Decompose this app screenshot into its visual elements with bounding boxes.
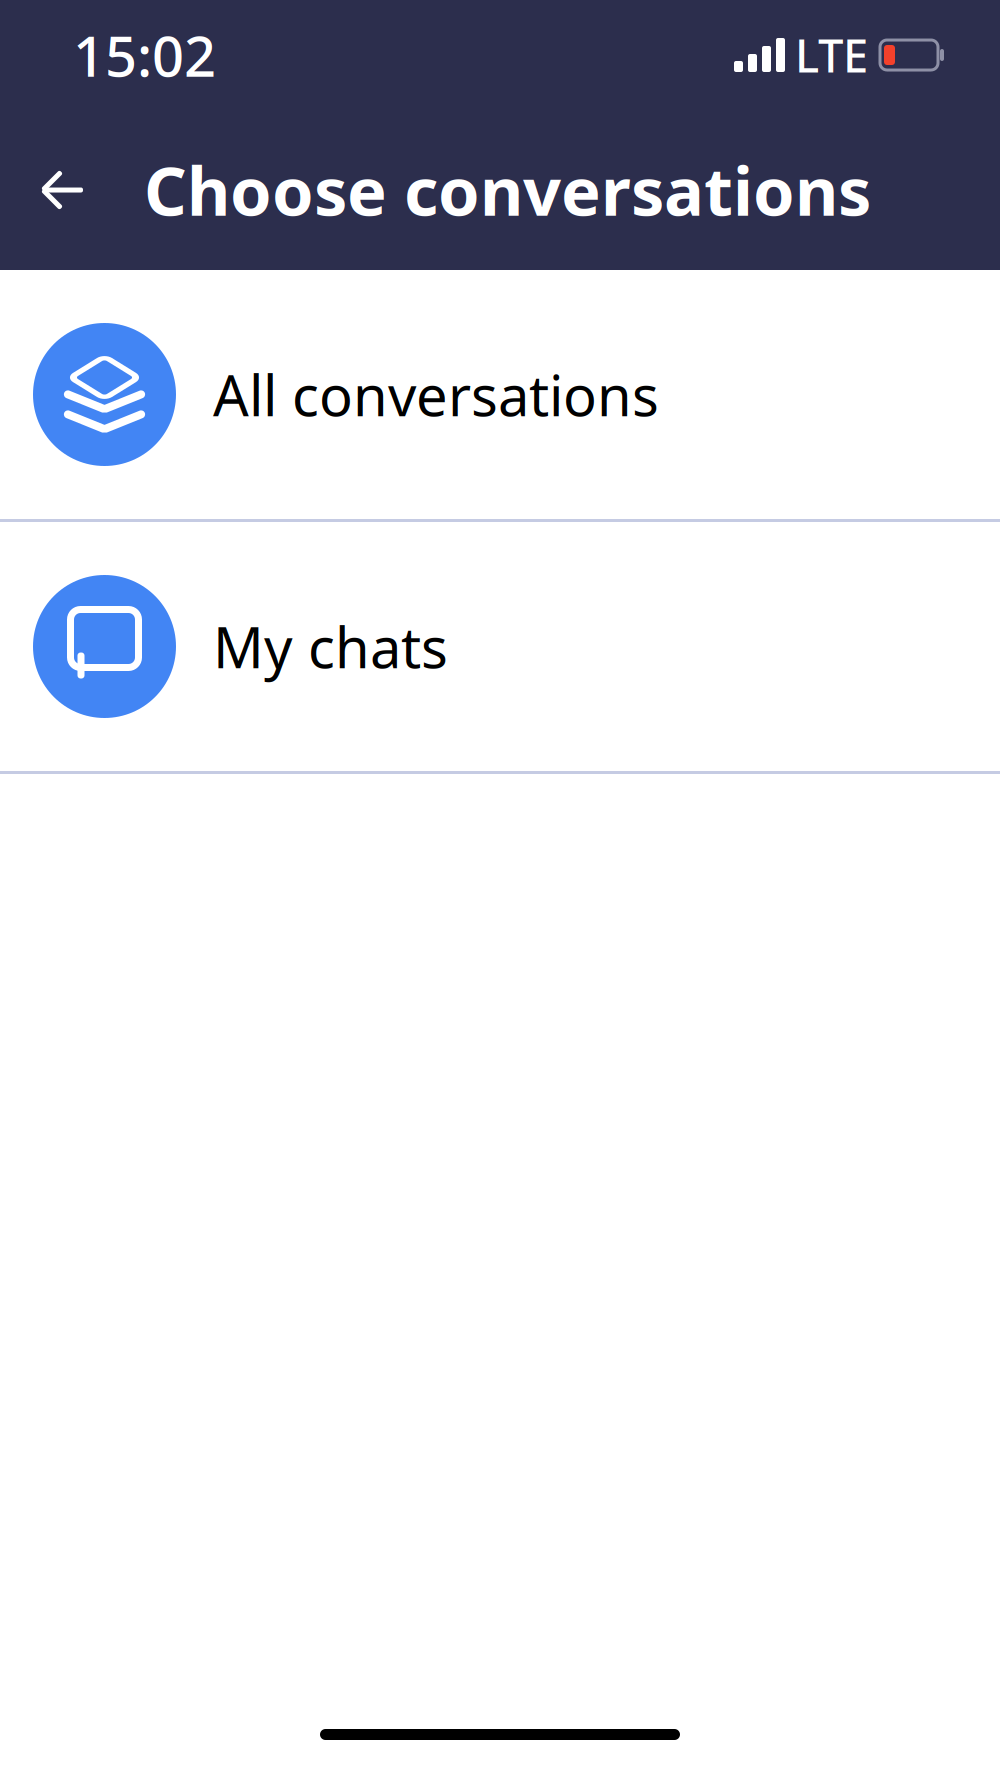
staticText: 15:02 [73,18,216,92]
staticText: My chats [213,609,448,684]
button[interactable]: My chats [0,522,1000,774]
staticText: LTE [795,25,868,85]
staticText: All conversations [213,357,659,432]
button[interactable]: Back [20,140,106,240]
staticText: Choose conversations [144,146,871,234]
button[interactable]: All conversations [0,270,1000,522]
